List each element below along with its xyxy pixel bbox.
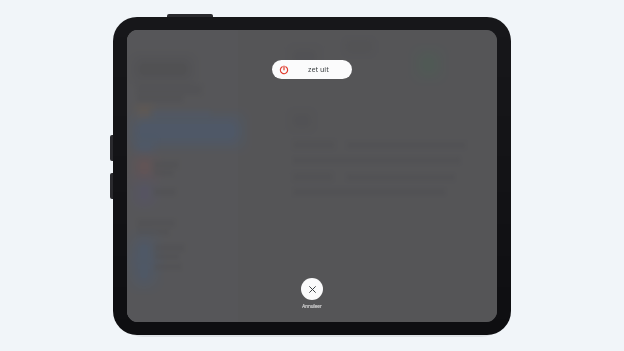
staticText: Annuleer	[302, 303, 322, 309]
button[interactable]: zet uit	[272, 60, 352, 79]
button[interactable]: Annuleer	[301, 278, 323, 300]
staticText: zet uit	[308, 65, 329, 75]
